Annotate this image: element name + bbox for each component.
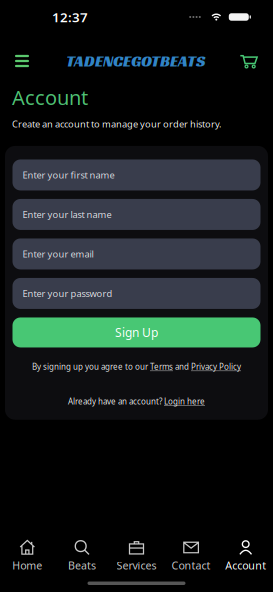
staticText: Terms <box>150 361 173 372</box>
button[interactable]: Menu <box>7 46 37 76</box>
staticText: Enter your password <box>22 287 112 300</box>
button[interactable]: Terms <box>150 361 173 372</box>
staticText: TADENCEGOTBEATS <box>66 51 205 71</box>
staticText: Enter your first name <box>22 169 114 181</box>
button[interactable]: Privacy Policy <box>191 361 241 372</box>
staticText: 12:37 <box>52 8 88 26</box>
staticText: Beats <box>68 558 96 572</box>
button[interactable]: Home <box>0 539 55 572</box>
staticText: Services <box>116 558 156 572</box>
staticText: Already have an account? <box>68 396 164 407</box>
button[interactable]: Beats <box>55 539 109 572</box>
staticText: Create an account to manage your order h… <box>12 118 222 130</box>
staticText: Enter your last name <box>22 208 111 221</box>
button[interactable]: Sign Up <box>12 317 260 347</box>
button[interactable]: Services <box>109 539 164 572</box>
staticText: Contact <box>172 558 211 572</box>
staticText: Enter your email <box>22 248 93 260</box>
staticText: By signing up you agree to our <box>32 361 150 372</box>
staticText: Sign Up <box>115 324 158 340</box>
button[interactable]: Login here <box>164 396 205 407</box>
staticText: and <box>173 361 191 372</box>
button[interactable]: Contact <box>164 539 218 572</box>
staticText: Login here <box>164 396 205 407</box>
button[interactable]: Account <box>218 539 273 572</box>
staticText: Privacy Policy <box>191 361 241 372</box>
staticText: Home <box>12 558 42 572</box>
staticText: Account <box>225 558 266 572</box>
staticText: Account <box>12 84 88 111</box>
button[interactable]: Cart <box>234 46 264 76</box>
